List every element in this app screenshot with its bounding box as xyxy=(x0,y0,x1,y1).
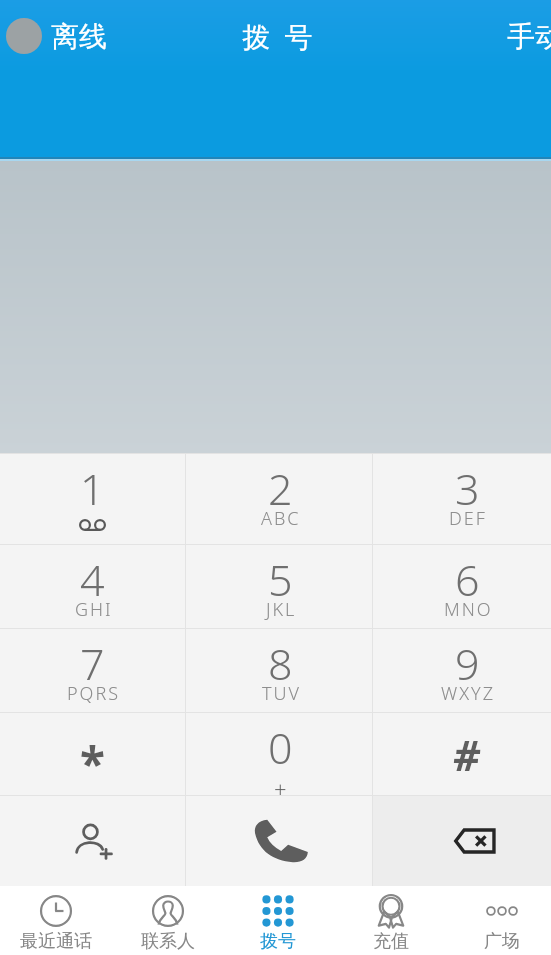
button[interactable]: 7 xyxy=(0,629,185,712)
button[interactable]: 4 xyxy=(0,545,185,628)
button[interactable]: 8 xyxy=(186,629,372,712)
staticText: MNO xyxy=(444,597,493,622)
staticText: 拨号 xyxy=(260,930,296,953)
button[interactable]: * xyxy=(0,713,185,795)
button[interactable]: 最近通话 xyxy=(0,886,111,955)
other: Add contact xyxy=(72,822,114,860)
button[interactable]: 拨号 xyxy=(221,886,331,955)
other: Backspace xyxy=(453,828,496,854)
staticText: TUV xyxy=(262,681,301,706)
staticText: 4 xyxy=(80,550,105,609)
staticText: 联系人 xyxy=(141,930,195,953)
staticText: 7 xyxy=(80,634,105,693)
staticText: 8 xyxy=(268,634,293,693)
staticText: 3 xyxy=(455,459,480,518)
staticText: 0 xyxy=(268,718,293,777)
staticText: 1 xyxy=(80,459,105,518)
button[interactable]: # xyxy=(373,713,551,795)
staticText: 5 xyxy=(268,550,293,609)
staticText: 2 xyxy=(268,459,293,518)
button[interactable]: 手动 xyxy=(485,0,551,72)
button[interactable]: 广场 xyxy=(441,886,551,955)
staticText: DEF xyxy=(449,506,487,531)
staticText: 最近通话 xyxy=(20,930,92,953)
staticText: ABC xyxy=(261,506,301,531)
staticText: WXYZ xyxy=(441,681,496,706)
button[interactable]: 5 xyxy=(186,545,372,628)
staticText: 9 xyxy=(455,634,480,693)
button[interactable]: Add contact xyxy=(0,796,185,886)
button[interactable]: 联系人 xyxy=(111,886,221,955)
button[interactable]: Backspace xyxy=(373,796,551,886)
button[interactable]: 2 xyxy=(186,454,372,544)
button[interactable]: 0 xyxy=(186,713,372,795)
button[interactable]: 充值 xyxy=(331,886,441,955)
staticText: * xyxy=(80,732,105,795)
other: Call xyxy=(251,818,309,864)
staticText: 拨 号 xyxy=(242,17,313,55)
staticText: 离线 xyxy=(51,19,107,54)
button[interactable]: 1 xyxy=(0,454,185,544)
button[interactable]: 离线 xyxy=(0,0,115,72)
staticText: 充值 xyxy=(373,930,409,953)
staticText: 广场 xyxy=(484,930,520,953)
button[interactable]: Call xyxy=(186,796,372,886)
staticText: 6 xyxy=(455,550,480,609)
staticText: PQRS xyxy=(67,681,121,706)
button[interactable]: 6 xyxy=(373,545,551,628)
staticText: 手动 xyxy=(507,19,551,54)
staticText: # xyxy=(453,726,481,783)
button[interactable]: 9 xyxy=(373,629,551,712)
staticText: JKL xyxy=(266,597,297,622)
button[interactable]: 3 xyxy=(373,454,551,544)
staticText: + xyxy=(274,774,287,804)
staticText: GHI xyxy=(75,597,113,622)
